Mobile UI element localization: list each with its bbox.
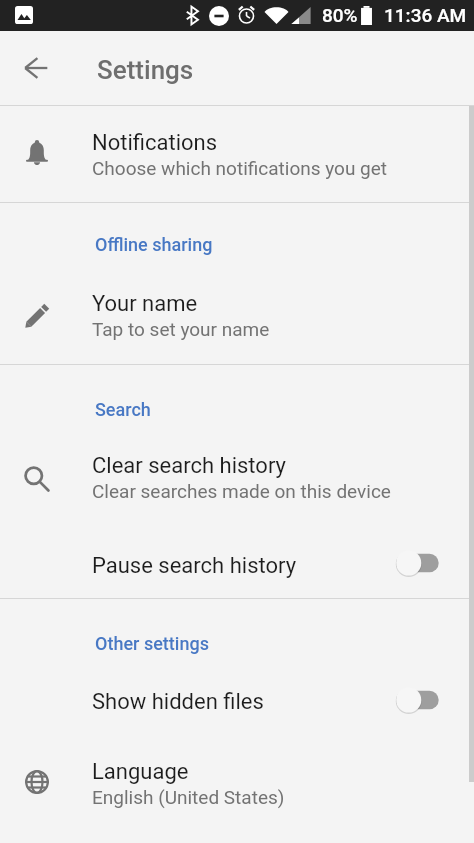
button[interactable] bbox=[0, 430, 474, 525]
button[interactable] bbox=[0, 106, 474, 201]
button[interactable] bbox=[0, 266, 474, 364]
button[interactable] bbox=[0, 737, 474, 820]
staticText: 11:36 AM bbox=[384, 4, 467, 26]
button[interactable] bbox=[0, 666, 474, 735]
staticText: English (United States) bbox=[92, 786, 285, 808]
staticText: Your name bbox=[92, 291, 198, 317]
button[interactable]: Back bbox=[11, 43, 61, 93]
staticText: Clear search history bbox=[92, 453, 286, 479]
staticText: Notifications bbox=[92, 130, 218, 156]
staticText: Clear searches made on this device bbox=[92, 480, 391, 502]
staticText: Pause search history bbox=[92, 553, 297, 579]
staticText: Show hidden files bbox=[92, 689, 264, 715]
staticText: 80% bbox=[322, 4, 358, 26]
staticText: Search bbox=[95, 399, 151, 420]
button[interactable] bbox=[0, 529, 474, 598]
staticText: Tap to set your name bbox=[92, 318, 270, 340]
staticText: Settings bbox=[97, 55, 194, 85]
staticText: Other settings bbox=[95, 633, 209, 654]
staticText: Offline sharing bbox=[95, 234, 213, 255]
staticText: Choose which notifications you get bbox=[92, 157, 388, 179]
staticText: Language bbox=[92, 759, 189, 785]
